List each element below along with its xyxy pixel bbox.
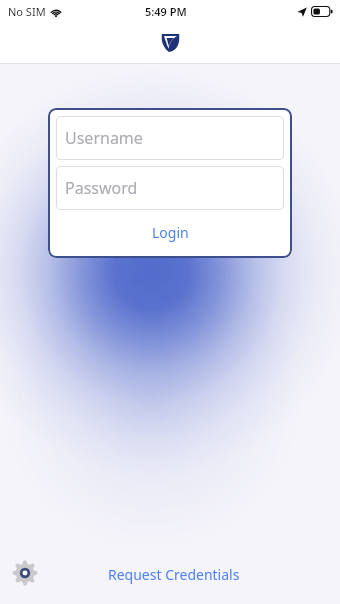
staticText: Login (152, 223, 189, 242)
button[interactable]: Request Credentials (102, 561, 246, 588)
staticText: Username (65, 127, 143, 149)
button[interactable]: Settings (10, 558, 40, 588)
button[interactable]: Username (56, 116, 284, 160)
button[interactable]: Password (56, 166, 284, 210)
button[interactable]: Login (138, 217, 203, 248)
staticText: No SIM (8, 4, 46, 19)
staticText: Password (65, 177, 138, 199)
staticText: 5:49 PM (145, 4, 187, 19)
staticText: Request Credentials (108, 565, 240, 584)
